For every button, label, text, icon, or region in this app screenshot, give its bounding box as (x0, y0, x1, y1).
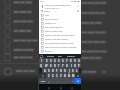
staticText: keyword list (45, 22, 56, 25)
button[interactable]: mid length keyword phrase row (41, 41, 79, 45)
staticText: D (52, 69, 54, 73)
button[interactable]: N (67, 73, 71, 78)
button[interactable]: X (51, 73, 55, 78)
button[interactable]: longer line of text describing here (41, 33, 79, 37)
staticText: C (56, 74, 58, 78)
button[interactable]: finishing (41, 49, 79, 53)
button[interactable]: 5 (57, 58, 61, 63)
staticText: A (44, 69, 46, 73)
staticText: 6 (62, 59, 64, 63)
button[interactable]: another one with content (41, 37, 79, 41)
button[interactable]: D (51, 68, 55, 73)
button[interactable]: Y (61, 63, 65, 68)
button[interactable]: M (71, 73, 75, 78)
staticText: B (64, 74, 66, 78)
button[interactable]: , (46, 78, 50, 84)
button[interactable]: G (59, 68, 63, 73)
staticText: G (60, 69, 62, 73)
staticText: V (60, 74, 62, 78)
staticText: 2 (46, 59, 48, 63)
staticText: 0 (78, 59, 80, 63)
button[interactable]: S (47, 68, 51, 73)
staticText: infinite (47, 55, 54, 58)
button[interactable]: . (70, 78, 74, 84)
button[interactable]: H (63, 68, 67, 73)
staticText: T (58, 64, 60, 68)
button[interactable]: 7 (65, 58, 69, 63)
button[interactable]: 6 (61, 58, 65, 63)
staticText: I (71, 64, 72, 68)
button[interactable]: Q (39, 63, 44, 68)
button[interactable]: E (49, 63, 53, 68)
staticText: J (69, 69, 70, 73)
button[interactable]: search (41, 9, 79, 13)
staticText: 1 (41, 59, 43, 63)
staticText: N (68, 74, 70, 78)
button[interactable]: K (71, 68, 75, 73)
button[interactable]: Backspace (75, 73, 81, 78)
staticText: W (45, 64, 48, 68)
staticText: H (64, 69, 66, 73)
staticText: finishing (45, 50, 53, 53)
button[interactable]: O (73, 63, 77, 68)
button[interactable]: Back (40, 4, 44, 8)
button[interactable]: Z (46, 73, 51, 78)
button[interactable]: 1 (39, 58, 44, 63)
staticText: U (66, 64, 68, 68)
button[interactable]: topic (41, 13, 79, 17)
staticText: X (52, 74, 54, 78)
staticText: 9 (74, 59, 76, 63)
button[interactable]: B (63, 73, 67, 78)
button[interactable]: W (44, 63, 49, 68)
button[interactable]: 2 (44, 58, 49, 63)
button[interactable]: 8 (69, 58, 73, 63)
staticText: ?123 (41, 80, 45, 82)
button[interactable]: 9 (73, 58, 77, 63)
button[interactable]: More options (76, 4, 80, 8)
button[interactable]: Home (58, 85, 63, 90)
staticText: some more text to cover a long line here (45, 46, 79, 49)
button[interactable]: P (77, 63, 81, 68)
staticText: R (54, 64, 56, 68)
staticText: 3 (50, 59, 52, 63)
button[interactable]: F (55, 68, 59, 73)
button[interactable]: 3 (49, 58, 53, 63)
button[interactable]: J (67, 68, 71, 73)
button[interactable]: Shift (39, 73, 46, 78)
button[interactable]: I (69, 63, 73, 68)
staticText: intro text here (45, 18, 58, 21)
button[interactable]: keyword list (41, 21, 79, 25)
button[interactable]: U (65, 63, 69, 68)
staticText: S (48, 69, 50, 73)
button[interactable]: L (75, 68, 79, 73)
staticText: Q (40, 64, 43, 68)
staticText: Y (62, 64, 64, 68)
button[interactable]: A (42, 68, 47, 73)
button[interactable]: T (57, 63, 61, 68)
button[interactable]: C (55, 73, 59, 78)
button[interactable]: Back (46, 85, 51, 90)
button[interactable]: 4 (53, 58, 57, 63)
staticText: edit (58, 55, 62, 58)
button[interactable]: some more text to cover a long line here (41, 45, 79, 49)
button[interactable]: 0 (77, 58, 81, 63)
staticText: some notes about it (45, 26, 63, 29)
button[interactable]: intro text here (41, 17, 79, 21)
staticText: P (78, 64, 80, 68)
staticText: 4 (54, 59, 56, 63)
button[interactable]: V (59, 73, 63, 78)
staticText: longer line of text describing here (45, 34, 76, 37)
staticText: E (50, 64, 52, 68)
staticText: . (72, 79, 73, 83)
staticText: 7 (66, 59, 68, 63)
button[interactable]: ?123 (39, 78, 46, 84)
staticText: another one with content (45, 38, 68, 41)
button[interactable]: Recents (69, 85, 74, 90)
staticText: 8 (70, 59, 72, 63)
button[interactable]: R (53, 63, 57, 68)
button[interactable]: search volume data (41, 29, 79, 33)
staticText: Important SEO keywords to target (45, 4, 76, 7)
button[interactable]: some notes about it (41, 25, 79, 29)
button[interactable]: Enter (74, 78, 81, 84)
